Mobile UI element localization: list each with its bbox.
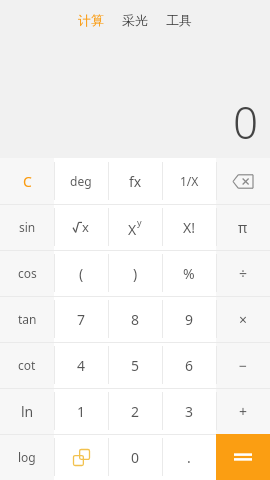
staticText: tan (18, 311, 37, 327)
button[interactable]: Copy (54, 434, 108, 480)
staticText: 1 (77, 402, 86, 421)
staticText: X (128, 220, 137, 239)
staticText: 0 (232, 92, 258, 152)
button[interactable]: ) (108, 250, 162, 296)
staticText: C (23, 172, 32, 191)
staticText: 7 (77, 310, 86, 329)
staticText: 1/X (180, 173, 199, 189)
staticText: 9 (185, 310, 194, 329)
staticText: x (82, 218, 89, 236)
button[interactable]: Backspace (216, 158, 270, 204)
button[interactable]: 2 (108, 388, 162, 434)
button[interactable]: log (0, 434, 54, 480)
button[interactable]: 0 (108, 434, 162, 480)
button[interactable]: 计算 (74, 9, 108, 31)
button[interactable]: 1/X (162, 158, 216, 204)
button[interactable]: × (216, 296, 270, 342)
staticText: − (239, 356, 248, 375)
staticText: 2 (131, 402, 140, 421)
staticText: 采光 (122, 12, 148, 28)
staticText: 6 (185, 356, 194, 375)
staticText: ( (79, 264, 84, 283)
staticText: log (18, 449, 36, 465)
button[interactable]: 采光 (118, 9, 152, 31)
staticText: 计算 (78, 12, 104, 28)
staticText: % (183, 264, 195, 283)
button[interactable]: . (162, 434, 216, 480)
staticText: × (239, 310, 248, 329)
button[interactable]: X! (162, 204, 216, 250)
button[interactable]: deg (54, 158, 108, 204)
staticText: cos (18, 265, 37, 281)
button[interactable]: X (108, 204, 162, 250)
staticText: 5 (131, 356, 140, 375)
staticText: . (187, 448, 191, 467)
button[interactable]: 8 (108, 296, 162, 342)
button[interactable]: % (162, 250, 216, 296)
staticText: sin (19, 219, 36, 235)
staticText: ÷ (239, 264, 248, 283)
button[interactable]: 3 (162, 388, 216, 434)
staticText: 8 (131, 310, 140, 329)
button[interactable]: ln (0, 388, 54, 434)
button[interactable]: − (216, 342, 270, 388)
button[interactable]: 1 (54, 388, 108, 434)
staticText: y (137, 216, 142, 228)
button[interactable]: ( (54, 250, 108, 296)
button[interactable]: ÷ (216, 250, 270, 296)
staticText: ) (133, 264, 138, 283)
staticText: fx (129, 172, 142, 191)
staticText: cot (18, 357, 36, 373)
button[interactable]: 4 (54, 342, 108, 388)
staticText: 工具 (166, 12, 192, 28)
button[interactable]: 5 (108, 342, 162, 388)
button[interactable]: tan (0, 296, 54, 342)
button[interactable]: cos (0, 250, 54, 296)
staticText: 3 (185, 402, 194, 421)
button[interactable]: fx (108, 158, 162, 204)
button[interactable]: sin (0, 204, 54, 250)
button[interactable]: 7 (54, 296, 108, 342)
button[interactable]: 工具 (162, 9, 196, 31)
button[interactable]: 9 (162, 296, 216, 342)
staticText: 4 (77, 356, 86, 375)
button[interactable]: 6 (162, 342, 216, 388)
button[interactable]: Equals (216, 434, 270, 480)
button[interactable]: x (54, 204, 108, 250)
staticText: X! (183, 218, 195, 237)
button[interactable]: π (216, 204, 270, 250)
staticText: + (239, 402, 248, 421)
staticText: ln (21, 402, 34, 421)
staticText: deg (70, 173, 92, 189)
staticText: 0 (131, 448, 140, 467)
button[interactable]: cot (0, 342, 54, 388)
staticText: π (238, 218, 248, 237)
button[interactable]: + (216, 388, 270, 434)
button[interactable]: C (0, 158, 54, 204)
